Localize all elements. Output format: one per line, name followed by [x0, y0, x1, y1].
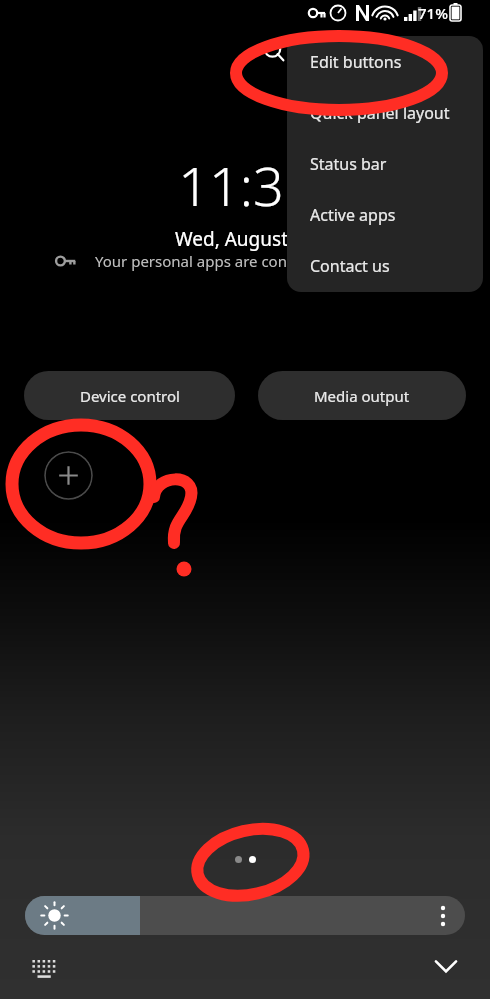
staticText: Quick panel layout — [310, 102, 450, 124]
button[interactable]: Contact us — [287, 240, 483, 291]
staticText: 71% — [418, 3, 448, 23]
staticText: 11:3 — [178, 148, 284, 222]
staticText: Status bar — [310, 153, 387, 175]
button[interactable]: Quick panel layout — [287, 87, 483, 138]
button[interactable]: Collapse — [428, 947, 464, 983]
button[interactable]: Status bar — [287, 138, 483, 189]
button[interactable]: Add — [44, 451, 93, 500]
staticText: Media output — [314, 386, 410, 406]
staticText: Active apps — [310, 204, 396, 226]
other: More brightness options — [433, 906, 453, 926]
staticText: Wed, August — [175, 226, 288, 252]
button[interactable]: Edit buttons — [287, 36, 483, 87]
staticText: Edit buttons — [310, 51, 402, 73]
staticText: Device control — [80, 386, 180, 406]
button[interactable]: Device control — [24, 371, 235, 420]
button[interactable]: Active apps — [287, 189, 483, 240]
button[interactable]: Keypad — [30, 951, 60, 981]
button[interactable]: Search — [261, 38, 287, 64]
button[interactable]: Brightness — [25, 896, 465, 935]
button[interactable]: Media output — [258, 371, 466, 420]
staticText: Contact us — [310, 255, 390, 277]
staticText: Your personal apps are connec — [95, 251, 312, 271]
